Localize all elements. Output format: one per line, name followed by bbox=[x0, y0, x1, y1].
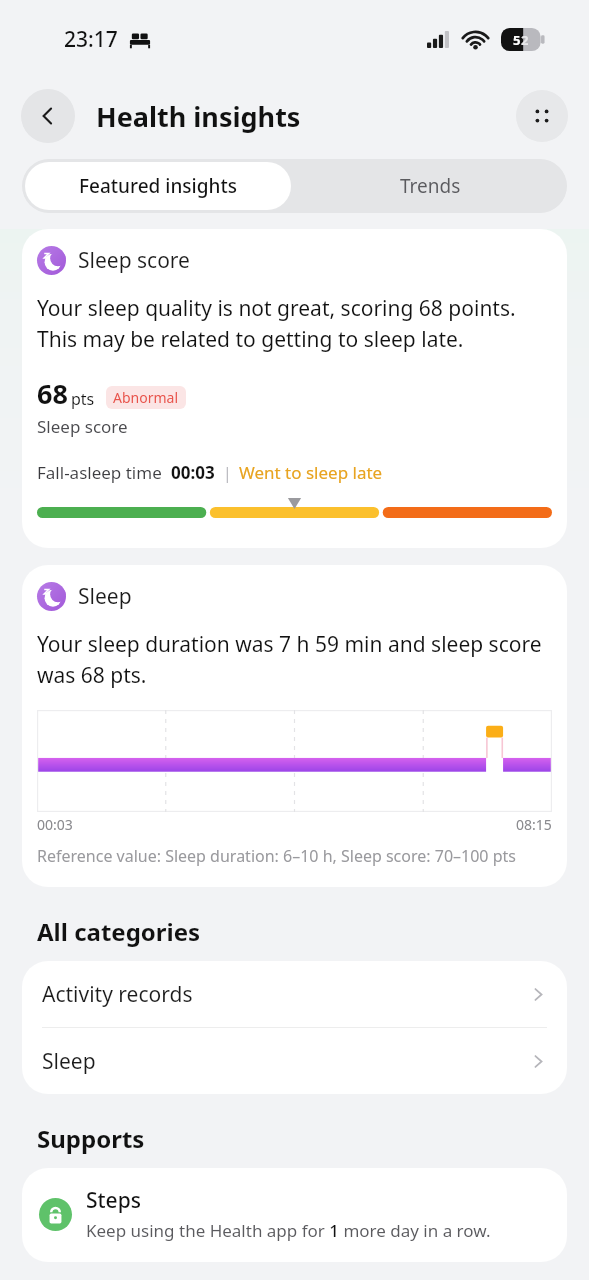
staticText: Activity records bbox=[42, 980, 193, 1009]
staticText: Your sleep quality is not great, scoring… bbox=[37, 294, 552, 353]
staticText: 00:03 bbox=[37, 815, 73, 834]
staticText: Steps bbox=[86, 1186, 141, 1215]
staticText: Health insights bbox=[96, 98, 301, 135]
staticText: Abnormal bbox=[113, 388, 179, 407]
staticText: pts bbox=[71, 388, 95, 410]
staticText: Sleep bbox=[78, 582, 132, 611]
staticText: Sleep score bbox=[78, 246, 190, 275]
staticText: 68 bbox=[37, 375, 68, 412]
staticText: Reference value: Sleep duration: 6–10 h,… bbox=[37, 845, 516, 867]
staticText: Supports bbox=[37, 1122, 145, 1155]
button[interactable]: Activity records bbox=[22, 961, 567, 1027]
staticText: 5 bbox=[513, 31, 521, 49]
button[interactable]: Trends bbox=[294, 159, 567, 213]
staticText: 23:17 bbox=[64, 25, 118, 54]
staticText: 2 bbox=[521, 31, 529, 49]
staticText: All categories bbox=[37, 915, 201, 948]
button[interactable]: Steps bbox=[22, 1168, 567, 1262]
staticText: Trends bbox=[400, 173, 461, 199]
staticText: Sleep bbox=[42, 1047, 96, 1076]
button[interactable]: Sleep bbox=[22, 1028, 567, 1094]
button[interactable]: More options bbox=[516, 90, 568, 142]
button[interactable]: Back bbox=[21, 89, 75, 143]
staticText: Sleep score bbox=[37, 415, 128, 438]
button[interactable]: Featured insights bbox=[25, 162, 291, 210]
staticText: Keep using the Health app for 1 more day… bbox=[86, 1219, 491, 1242]
staticText: Fall-asleep time bbox=[37, 461, 162, 484]
staticText: Your sleep duration was 7 h 59 min and s… bbox=[37, 630, 552, 689]
button[interactable]: Sleep bbox=[22, 565, 567, 887]
staticText: 08:15 bbox=[516, 815, 552, 834]
staticText: 00:03 bbox=[171, 461, 215, 484]
staticText: | bbox=[223, 462, 232, 484]
button[interactable]: Sleep score bbox=[22, 229, 567, 548]
staticText: Went to sleep late bbox=[239, 461, 383, 484]
staticText: Featured insights bbox=[79, 173, 237, 199]
